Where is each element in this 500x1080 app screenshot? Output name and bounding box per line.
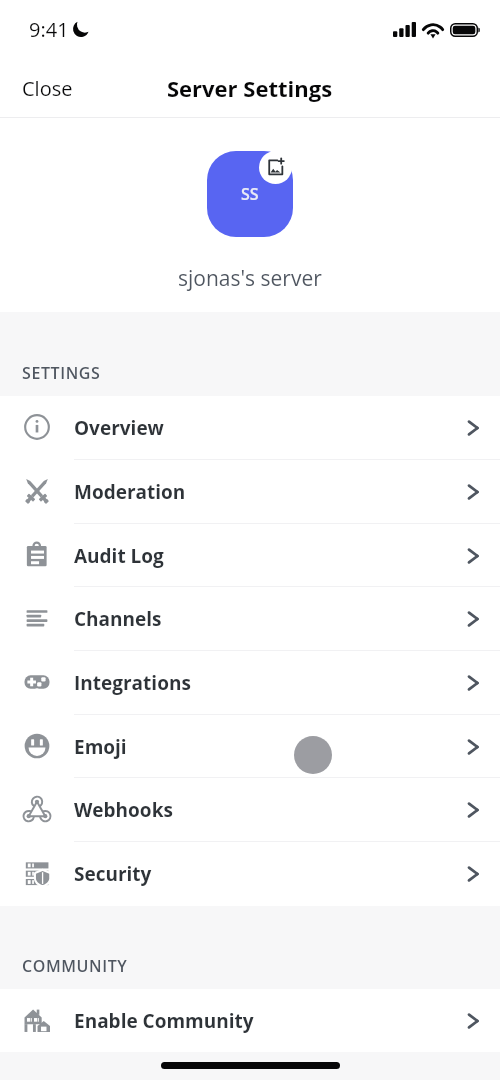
staticText: Overview — [74, 415, 164, 441]
button[interactable]: Webhooks — [0, 778, 500, 842]
staticText: Moderation — [74, 479, 186, 505]
button[interactable]: Moderation — [0, 460, 500, 524]
button[interactable]: Enable Community — [0, 989, 500, 1052]
staticText: Channels — [74, 606, 162, 632]
button[interactable]: Channels — [0, 587, 500, 651]
staticText: Audit Log — [74, 543, 164, 569]
staticText: SETTINGS — [22, 362, 101, 384]
button[interactable]: Change server icon — [259, 151, 292, 184]
button[interactable]: Audit Log — [0, 524, 500, 587]
staticText: 9:41 — [29, 16, 69, 43]
staticText: Close — [22, 75, 73, 102]
staticText: Enable Community — [74, 1008, 254, 1034]
staticText: Security — [74, 861, 152, 887]
staticText: COMMUNITY — [22, 955, 128, 977]
button[interactable]: Security — [0, 842, 500, 906]
button[interactable]: Emoji — [0, 715, 500, 778]
button[interactable]: SS — [207, 151, 293, 237]
staticText: sjonas's server — [178, 264, 322, 293]
staticText: Server Settings — [167, 73, 333, 103]
button[interactable]: Close — [0, 58, 95, 118]
button[interactable]: Integrations — [0, 651, 500, 715]
staticText: Webhooks — [74, 797, 173, 823]
button[interactable]: Overview — [0, 396, 500, 460]
staticText: Emoji — [74, 734, 127, 760]
staticText: SS — [241, 183, 259, 205]
staticText: Integrations — [74, 670, 191, 696]
